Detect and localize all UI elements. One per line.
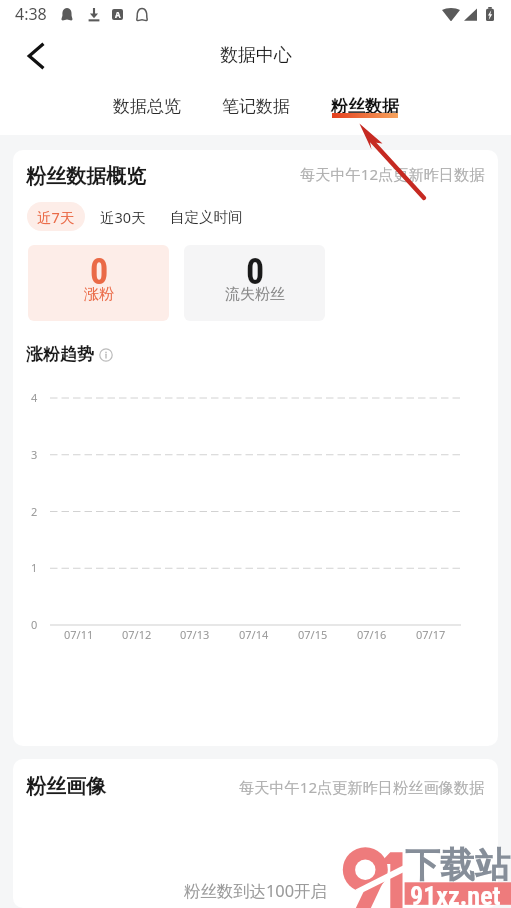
staticText: 3 [31,447,38,462]
staticText: 0 [31,617,38,632]
staticText: 涨粉趋势 [26,344,94,365]
staticText: 07/14 [239,627,269,642]
staticText: 流失粉丝 [225,285,285,304]
staticText: 下载站 [405,843,510,887]
staticText: 07/16 [357,627,387,642]
staticText: 1 [31,560,38,575]
staticText: 91xz.net [410,881,501,908]
staticText: 每天中午12点更新昨日粉丝画像数据 [239,777,485,798]
staticText: 笔记数据 [222,96,290,117]
button[interactable]: 近7天 [27,202,85,231]
staticText: 07/15 [298,627,328,642]
staticText: 粉丝画像 [26,774,106,799]
staticText: 07/11 [64,627,94,642]
staticText: 07/13 [180,627,210,642]
staticText: 07/12 [122,627,152,642]
staticText: 07/17 [416,627,446,642]
staticText: 近30天 [100,207,146,227]
staticText: 4 [31,390,38,405]
button[interactable]: 近30天 [85,202,156,231]
button[interactable]: 数据总览 [92,93,201,133]
button[interactable]: 粉丝数据 [310,93,419,133]
staticText: 粉丝数据 [331,96,399,117]
staticText: 每天中午12点更新昨日数据 [300,164,485,185]
button[interactable]: 0 [184,245,325,321]
staticText: 0 [90,251,109,293]
staticText: 4:38 [15,3,47,25]
staticText: 数据中心 [220,44,292,67]
button[interactable]: 笔记数据 [201,93,310,133]
staticText: A [115,9,121,20]
staticText: 0 [246,251,265,293]
staticText: 涨粉 [84,285,114,304]
staticText: 粉丝数到达100开启 [184,879,327,901]
button[interactable]: 0 [28,245,169,321]
staticText: 粉丝数据概览 [26,164,146,189]
staticText: 2 [31,504,38,519]
button[interactable]: Back [15,36,55,76]
button[interactable]: 自定义时间 [156,202,257,231]
staticText: 自定义时间 [170,208,243,226]
staticText: 近7天 [37,207,75,227]
staticText: 数据总览 [113,96,181,117]
